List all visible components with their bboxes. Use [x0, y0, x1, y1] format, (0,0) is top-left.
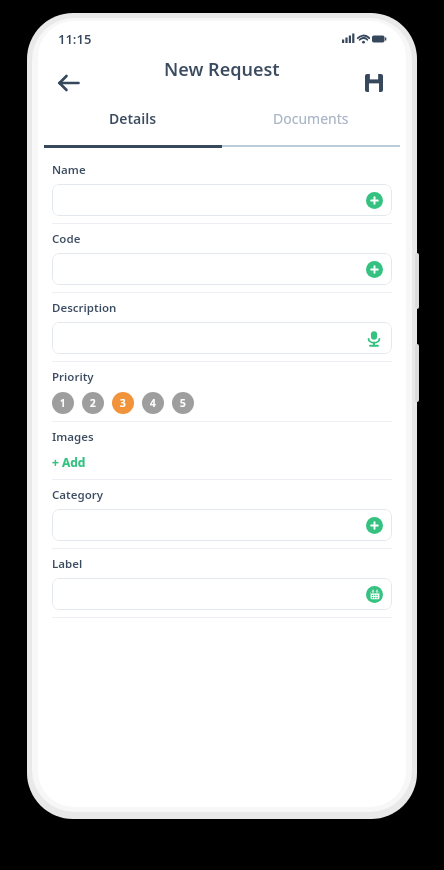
button[interactable]: Pick date: [52, 578, 392, 610]
other: Voice input: [365, 329, 383, 347]
other: Add: [366, 261, 383, 278]
staticText: 1: [60, 396, 66, 410]
button[interactable]: 2: [82, 392, 104, 414]
other: Add: [366, 517, 383, 534]
staticText: Category: [52, 487, 104, 503]
button[interactable]: Add: [52, 253, 392, 285]
other: Pick date: [366, 586, 383, 603]
button[interactable]: + Add: [52, 454, 86, 470]
button[interactable]: 1: [52, 392, 74, 414]
button[interactable]: 5: [172, 392, 194, 414]
staticText: Images: [52, 429, 94, 445]
button[interactable]: Back: [48, 62, 90, 104]
staticText: Name: [52, 162, 86, 178]
staticText: 4: [150, 396, 156, 410]
button[interactable]: Documents: [222, 109, 400, 128]
button[interactable]: Save: [354, 63, 394, 103]
staticText: Code: [52, 231, 81, 247]
staticText: New Request: [164, 57, 280, 82]
staticText: 3: [120, 396, 126, 410]
staticText: Priority: [52, 369, 94, 385]
button[interactable]: Voice input: [52, 322, 392, 354]
staticText: + Add: [52, 454, 86, 470]
staticText: Description: [52, 300, 117, 316]
staticText: 2: [90, 396, 96, 410]
staticText: 5: [180, 396, 186, 410]
button[interactable]: Details: [44, 109, 222, 128]
staticText: Label: [52, 556, 83, 572]
other: Add: [366, 192, 383, 209]
button[interactable]: Add: [52, 184, 392, 216]
button[interactable]: Add: [52, 509, 392, 541]
staticText: 11:15: [58, 30, 92, 48]
staticText: Details: [109, 109, 157, 128]
button[interactable]: 3: [112, 392, 134, 414]
button[interactable]: 4: [142, 392, 164, 414]
staticText: Documents: [273, 109, 349, 128]
